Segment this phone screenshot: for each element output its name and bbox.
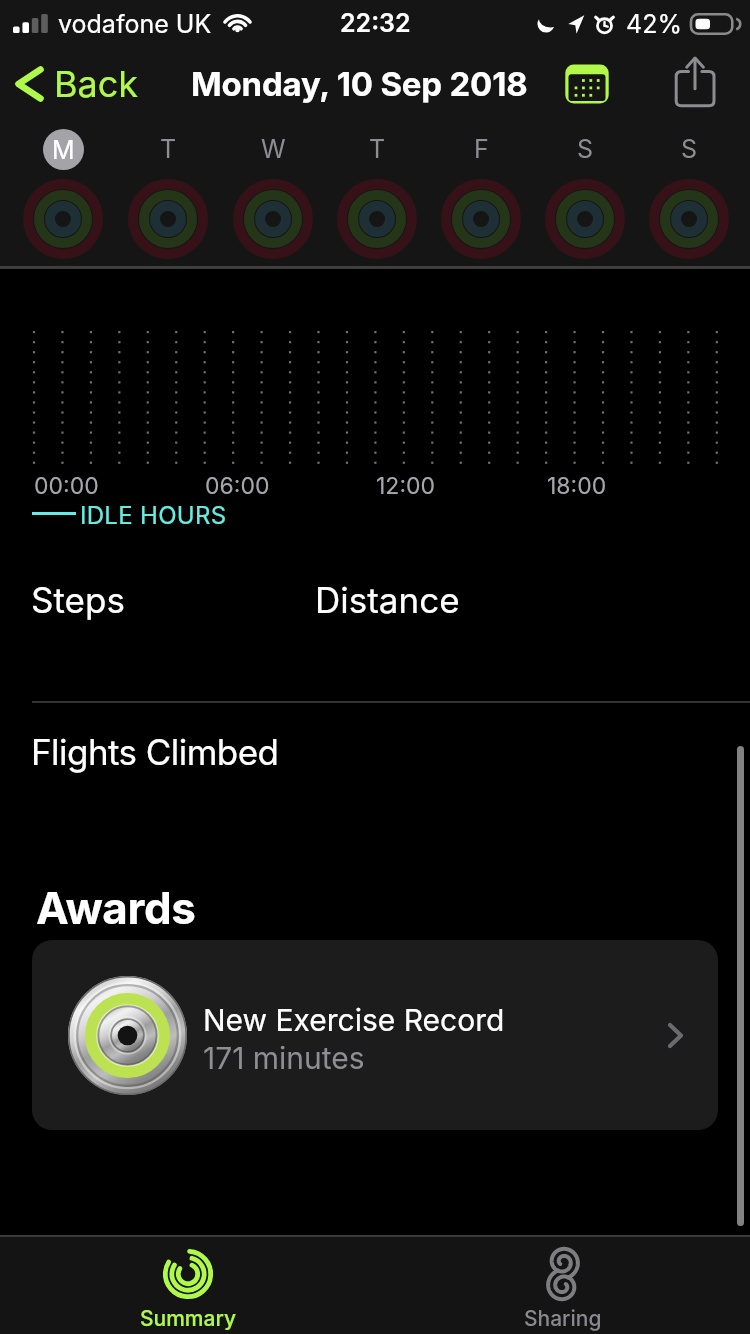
staticText: S <box>577 134 594 164</box>
staticText: 12:00 <box>376 472 436 500</box>
staticText: Awards <box>36 881 196 934</box>
button[interactable]: S <box>533 120 637 266</box>
button[interactable]: T <box>325 120 429 266</box>
staticText: Back <box>54 62 139 106</box>
staticText: vodafone UK <box>58 9 212 39</box>
button[interactable]: M <box>10 120 115 266</box>
button[interactable]: Share <box>668 54 722 114</box>
staticText: T <box>160 134 177 164</box>
button[interactable]: F <box>429 120 533 266</box>
button[interactable]: S <box>637 120 741 266</box>
staticText: F <box>474 134 489 164</box>
staticText: Steps <box>31 579 125 621</box>
staticText: 22:32 <box>340 8 411 38</box>
staticText: 42% <box>626 9 682 39</box>
staticText: S <box>681 134 698 164</box>
staticText: 18:00 <box>547 472 607 500</box>
button[interactable]: Sharing <box>375 1237 750 1334</box>
staticText: Distance <box>315 579 460 621</box>
staticText: IDLE HOURS <box>80 501 227 530</box>
staticText: New Exercise Record <box>203 1002 505 1038</box>
staticText: Sharing <box>524 1306 602 1331</box>
button[interactable]: New Exercise Record <box>32 940 718 1130</box>
staticText: 171 minutes <box>203 1040 365 1076</box>
button[interactable]: T <box>115 120 220 266</box>
staticText: 00:00 <box>34 472 99 500</box>
button[interactable]: W <box>220 120 325 266</box>
staticText: T <box>369 134 386 164</box>
button[interactable]: Calendar <box>563 56 611 112</box>
staticText: M <box>52 135 75 165</box>
staticText: W <box>261 134 286 164</box>
button[interactable]: Back <box>0 56 151 112</box>
staticText: Flights Climbed <box>31 731 279 773</box>
staticText: Summary <box>140 1306 236 1331</box>
button[interactable]: Summary <box>0 1237 375 1334</box>
staticText: 06:00 <box>205 472 270 500</box>
staticText: Monday, 10 Sep 2018 <box>191 64 528 104</box>
